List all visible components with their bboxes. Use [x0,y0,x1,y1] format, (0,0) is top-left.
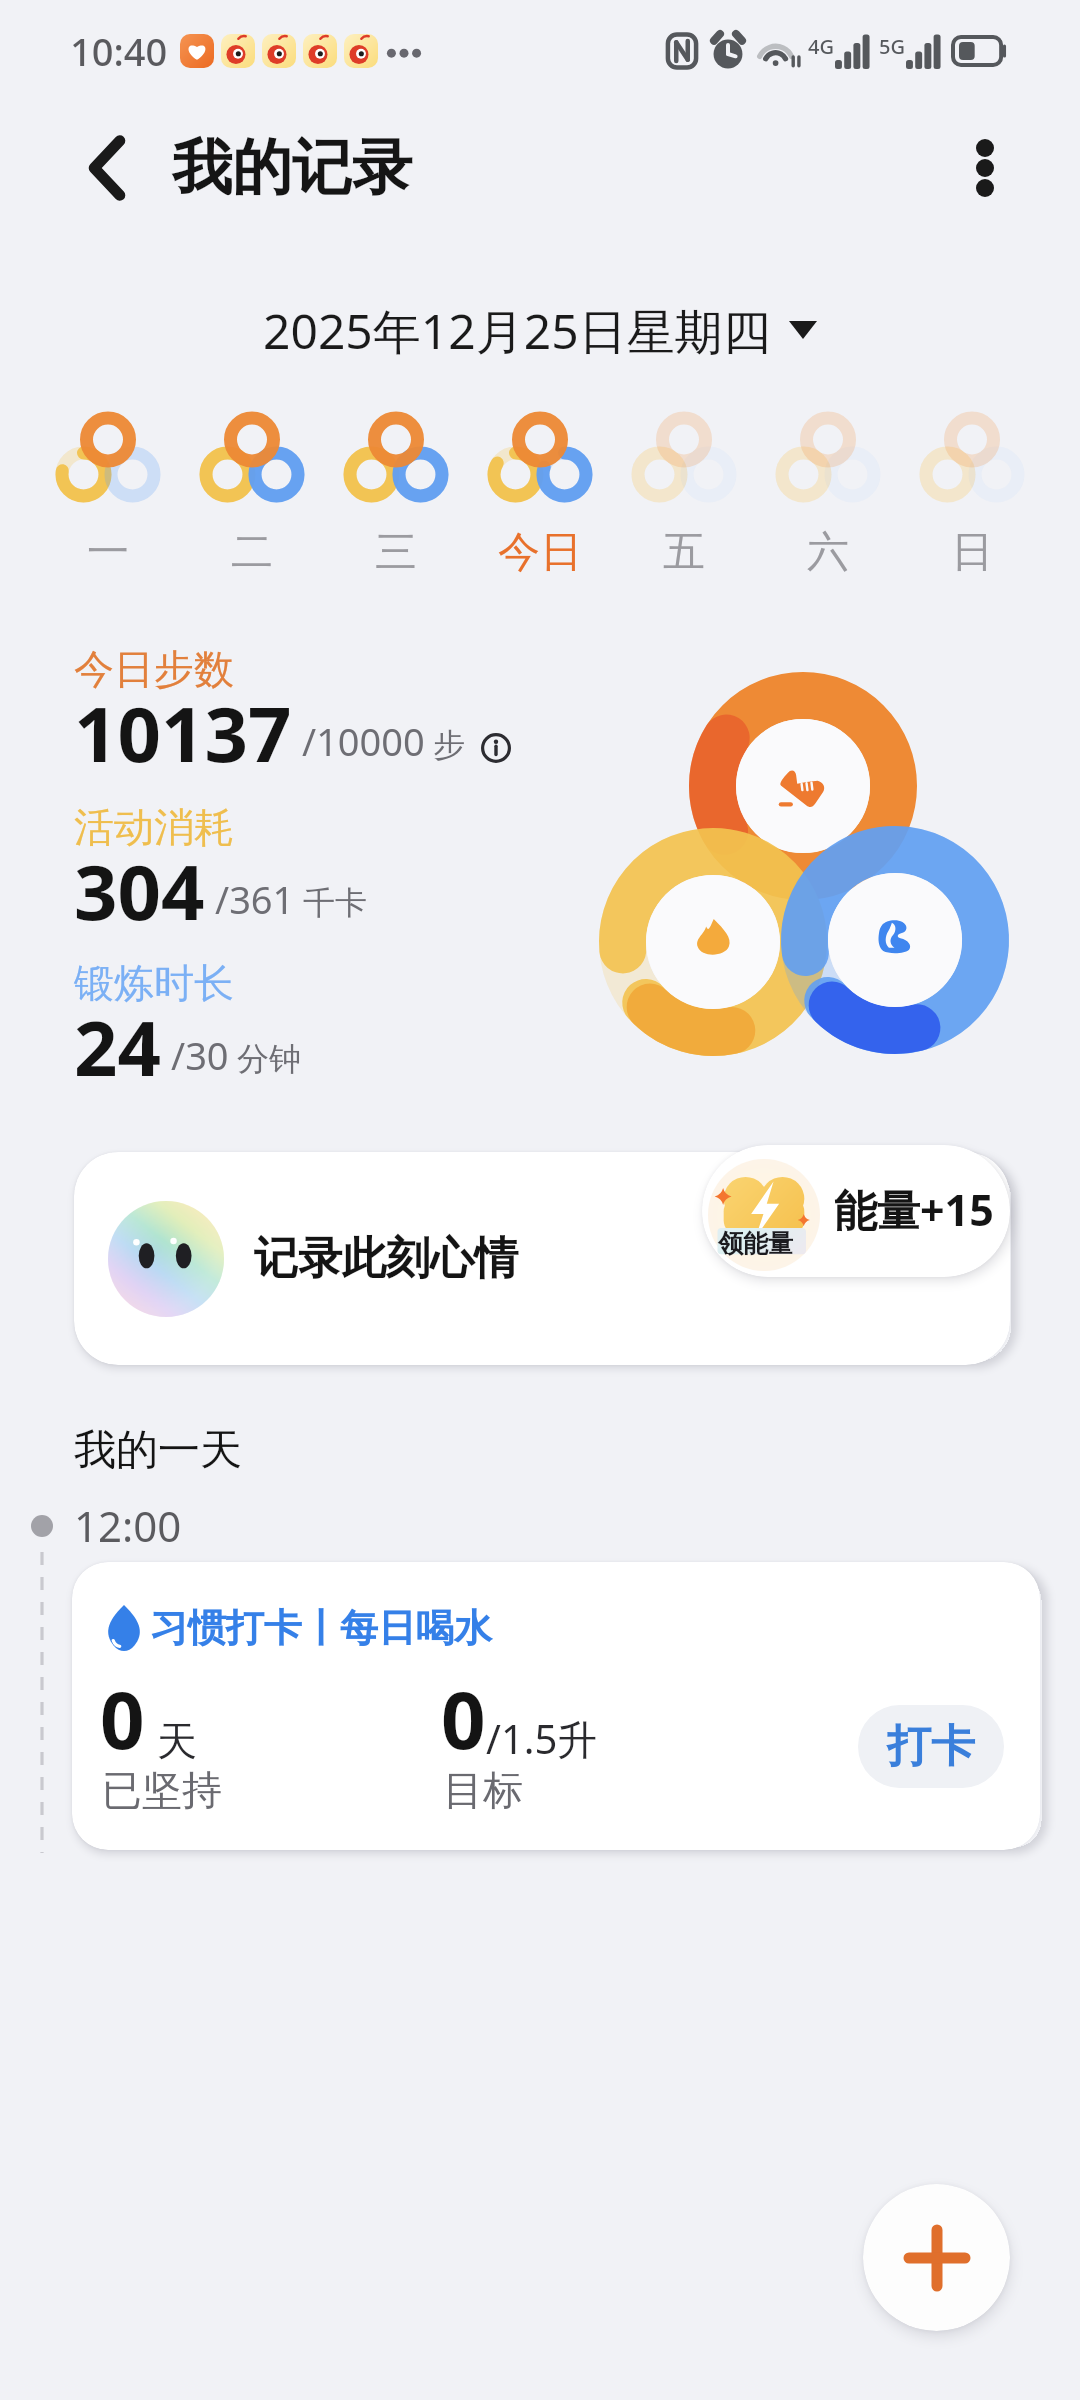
staticText: 一 [87,526,129,579]
staticText: 步 [433,725,465,765]
staticText: 记录此刻心情 [254,1231,518,1286]
button[interactable]: Add [863,2184,1010,2331]
staticText: 能量+15 [834,1180,994,1239]
staticText: 活动消耗 [74,802,234,852]
staticText: 三 [375,526,417,579]
staticText: 锻炼时长 [74,958,234,1008]
staticText: 目标 [443,1765,523,1815]
button[interactable]: More options [930,113,1040,223]
staticText: /1.5升 [486,1711,598,1766]
button[interactable]: Info [481,733,511,763]
staticText: 五 [663,526,705,579]
button[interactable]: 2025年12月25日星期四 [259,294,821,366]
staticText: 领能量 [718,1228,793,1259]
staticText: 10137 [74,681,292,785]
staticText: 日 [951,526,993,579]
staticText: /10000 [302,715,425,767]
staticText: 10:40 [70,25,168,77]
staticText: 今日 [498,526,582,579]
button[interactable]: 日 [900,406,1044,586]
staticText: 二 [231,526,273,579]
staticText: 0 [100,1666,145,1772]
staticText: 天 [157,1716,197,1766]
button[interactable]: 记录此刻心情 [74,1152,1010,1365]
staticText: 分钟 [237,1039,301,1079]
button[interactable]: 今日 [468,406,612,586]
staticText: 已坚持 [102,1765,222,1815]
staticText: 12:00 [74,1497,182,1554]
staticText: 我的一天 [74,1424,242,1477]
button[interactable]: 领能量 [702,1145,1010,1277]
button[interactable]: 习惯打卡丨每日喝水 [72,1562,1040,1850]
staticText: 24 [74,995,161,1099]
button[interactable]: 六 [756,406,900,586]
button[interactable]: 一 [36,406,180,586]
staticText: 千卡 [303,883,367,923]
button[interactable]: 打卡 [858,1705,1004,1788]
staticText: 我的记录 [172,130,412,206]
staticText: 六 [807,526,849,579]
staticText: 习惯打卡丨每日喝水 [150,1604,492,1652]
staticText: 4G [808,33,834,60]
staticText: 5G [879,33,905,60]
staticText: /30 [171,1029,229,1081]
staticText: 0 [441,1666,486,1772]
button[interactable]: 五 [612,406,756,586]
button[interactable]: 三 [324,406,468,586]
staticText: 今日步数 [74,644,234,694]
staticText: 2025年12月25日星期四 [263,298,771,362]
button[interactable]: 二 [180,406,324,586]
button[interactable]: Back [52,113,162,223]
staticText: /361 [215,873,295,925]
staticText: 304 [74,839,205,943]
staticText: 打卡 [887,1719,975,1774]
